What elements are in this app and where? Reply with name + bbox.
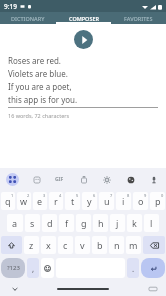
- button[interactable]: n: [109, 236, 124, 254]
- staticText: h: [98, 217, 104, 229]
- staticText: n: [114, 239, 120, 251]
- staticText: COMPOSER: [69, 15, 99, 22]
- staticText: 4: [59, 193, 62, 198]
- staticText: c: [63, 239, 68, 251]
- button[interactable]: FAVORITES: [111, 12, 166, 24]
- button[interactable]: u: [99, 192, 114, 210]
- button[interactable]: Themes: [124, 173, 137, 186]
- button[interactable]: Enter: [141, 258, 165, 278]
- button[interactable]: q: [1, 192, 15, 210]
- staticText: o: [138, 195, 144, 207]
- button[interactable]: c: [58, 236, 73, 254]
- staticText: 0: [161, 193, 164, 198]
- staticText: j: [116, 217, 119, 229]
- button[interactable]: g: [76, 214, 91, 232]
- staticText: .: [132, 263, 135, 274]
- button[interactable]: DICTIONARY: [0, 12, 56, 24]
- staticText: 16 words, 72 characters: [8, 112, 70, 119]
- staticText: 8: [127, 193, 130, 198]
- button[interactable]: t: [65, 192, 80, 210]
- button[interactable]: e: [33, 192, 47, 210]
- button[interactable]: w: [17, 192, 31, 210]
- button[interactable]: Hide keyboard: [10, 284, 20, 294]
- button[interactable]: v: [75, 236, 90, 254]
- staticText: x: [46, 239, 51, 251]
- button[interactable]: a: [7, 214, 23, 232]
- staticText: a: [12, 217, 18, 229]
- staticText: l: [150, 217, 153, 229]
- staticText: v: [80, 239, 85, 251]
- staticText: FAVORITES: [124, 15, 153, 22]
- staticText: DICTIONARY: [11, 15, 45, 22]
- staticText: u: [104, 195, 110, 207]
- staticText: 9:19: [4, 2, 17, 11]
- staticText: ,: [32, 263, 35, 274]
- button[interactable]: Open features menu: [6, 173, 19, 186]
- staticText: 6: [93, 193, 96, 198]
- button[interactable]: b: [92, 236, 107, 254]
- button[interactable]: h: [93, 214, 108, 232]
- staticText: this app is for you.: [8, 94, 78, 105]
- staticText: q: [5, 195, 11, 207]
- button[interactable]: ,: [27, 258, 39, 278]
- staticText: b: [97, 239, 103, 251]
- button[interactable]: f: [59, 214, 74, 232]
- staticText: p: [155, 195, 161, 207]
- button[interactable]: j: [110, 214, 125, 232]
- staticText: w: [20, 195, 28, 207]
- button[interactable]: k: [127, 214, 142, 232]
- button[interactable]: GIF: [53, 173, 66, 186]
- button[interactable]: Emoji: [41, 258, 54, 278]
- staticText: ?123: [7, 264, 20, 272]
- staticText: Roses are red.: [8, 55, 62, 66]
- button[interactable]: x: [41, 236, 56, 254]
- button[interactable]: i: [116, 192, 131, 210]
- staticText: t: [71, 195, 75, 207]
- button[interactable]: s: [25, 214, 40, 232]
- button[interactable]: d: [42, 214, 57, 232]
- button[interactable]: ?123: [1, 258, 25, 278]
- button[interactable]: m: [126, 236, 141, 254]
- staticText: r: [54, 195, 58, 207]
- staticText: GIF: [55, 176, 64, 183]
- staticText: 1: [11, 193, 14, 198]
- staticText: 9: [144, 193, 147, 198]
- staticText: k: [132, 217, 137, 229]
- staticText: 2: [27, 193, 30, 198]
- staticText: 5: [76, 193, 79, 198]
- staticText: i: [122, 195, 125, 207]
- button[interactable]: p: [150, 192, 165, 210]
- staticText: 3: [43, 193, 46, 198]
- staticText: e: [37, 195, 43, 207]
- staticText: s: [30, 217, 35, 229]
- staticText: d: [47, 217, 53, 229]
- staticText: 7: [110, 193, 113, 198]
- staticText: g: [81, 217, 87, 229]
- staticText: m: [129, 239, 138, 251]
- staticText: If you are a poet,: [8, 81, 72, 92]
- staticText: f: [65, 217, 69, 229]
- button[interactable]: COMPOSER: [56, 12, 111, 24]
- button[interactable]: Backspace: [143, 236, 165, 254]
- button[interactable]: .: [127, 258, 139, 278]
- staticText: Violets are blue.: [8, 68, 68, 79]
- button[interactable]: Play: [74, 30, 93, 49]
- button[interactable]: Shift: [1, 236, 22, 254]
- button[interactable]: Voice input: [147, 173, 160, 186]
- button[interactable]: l: [144, 214, 159, 232]
- button[interactable]: Clipboard: [77, 173, 90, 186]
- button[interactable]: Stickers: [30, 173, 43, 186]
- button[interactable]: z: [24, 236, 39, 254]
- button[interactable]: Change keyboard: [148, 284, 158, 294]
- button[interactable]: Settings: [100, 173, 113, 186]
- button[interactable]: y: [82, 192, 97, 210]
- button[interactable]: r: [49, 192, 63, 210]
- staticText: z: [29, 239, 34, 251]
- staticText: y: [87, 195, 92, 207]
- button[interactable]: o: [133, 192, 148, 210]
